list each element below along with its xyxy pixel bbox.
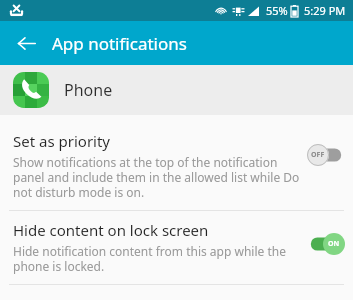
button[interactable]: Hide content on lock screen — [0, 211, 353, 284]
button[interactable]: On — [307, 233, 345, 255]
staticText: Hide notification content from this app … — [13, 243, 302, 274]
button[interactable]: Phone — [0, 65, 353, 115]
staticText: App notifications — [52, 32, 187, 55]
button[interactable]: Back — [10, 27, 42, 59]
staticText: ON — [328, 239, 340, 249]
staticText: 5:29 PM — [304, 3, 346, 18]
staticText: Hide content on lock screen — [13, 220, 209, 240]
staticText: Set as priority — [13, 131, 111, 151]
button[interactable]: Off — [307, 144, 345, 166]
staticText: OFF — [311, 150, 325, 160]
staticText: 55% — [266, 3, 288, 18]
staticText: Show notifications at the top of the not… — [13, 154, 302, 200]
button[interactable]: Set as priority — [0, 122, 353, 210]
staticText: Phone — [64, 79, 113, 101]
